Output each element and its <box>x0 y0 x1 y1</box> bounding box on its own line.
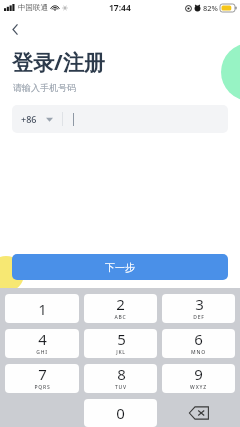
button[interactable]: 1 <box>5 294 79 323</box>
button[interactable]: 3 <box>162 294 235 323</box>
button[interactable]: 0 <box>84 399 157 427</box>
staticText: ABC <box>114 314 127 321</box>
staticText: +86 <box>21 113 37 125</box>
button[interactable]: 7 <box>5 364 79 393</box>
staticText: DEF <box>193 314 205 321</box>
staticText: 7 <box>38 364 47 384</box>
staticText: 9 <box>194 364 203 384</box>
button[interactable]: +86 <box>12 105 228 133</box>
button[interactable]: 5 <box>84 329 157 358</box>
staticText: WXYZ <box>190 384 207 391</box>
staticText: PQRS <box>34 384 51 391</box>
staticText: 82% <box>203 3 218 13</box>
staticText: 17:44 <box>109 2 131 14</box>
staticText: 3 <box>195 294 204 314</box>
staticText: 下一步 <box>105 261 135 274</box>
staticText: 2 <box>116 294 125 314</box>
staticText: 5 <box>117 329 126 349</box>
button[interactable]: 删除 <box>162 399 235 427</box>
staticText: 4 <box>38 329 47 349</box>
button[interactable]: 8 <box>84 364 157 393</box>
staticText: JKL <box>116 349 126 356</box>
staticText: 6 <box>194 329 203 349</box>
staticText: MNO <box>191 349 206 356</box>
button[interactable]: 4 <box>5 329 79 358</box>
staticText: TUV <box>115 384 127 391</box>
button[interactable]: 2 <box>84 294 157 323</box>
staticText: 0 <box>116 403 125 423</box>
button[interactable]: 6 <box>162 329 235 358</box>
staticText: 中国联通 <box>18 3 48 12</box>
staticText: 登录/注册 <box>12 48 105 77</box>
staticText: 8 <box>117 364 126 384</box>
button[interactable]: 下一步 <box>12 254 228 280</box>
staticText: GHI <box>36 349 48 356</box>
button[interactable]: 9 <box>162 364 235 393</box>
staticText: 请输入手机号码 <box>13 82 76 93</box>
staticText: 1 <box>38 299 47 319</box>
button[interactable]: 返回 <box>4 18 26 40</box>
